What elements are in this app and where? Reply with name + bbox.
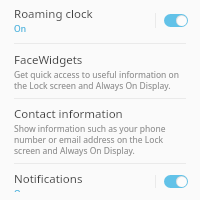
button[interactable]: FaceWidgets	[0, 44, 200, 98]
staticText: On	[14, 188, 26, 192]
staticText: Notifications	[14, 171, 83, 187]
button[interactable]: Contact information	[0, 99, 200, 163]
button[interactable]: Notifications	[0, 164, 200, 200]
staticText: On	[14, 23, 26, 35]
staticText: Contact information	[14, 106, 123, 122]
staticText: Roaming clock	[14, 6, 93, 22]
staticText: Get quick access to useful information o…	[14, 69, 182, 91]
button[interactable]: Roaming clock	[0, 0, 200, 43]
staticText: FaceWidgets	[14, 52, 83, 68]
button[interactable]: Toggle setting on or off	[149, 171, 194, 192]
staticText: Show information such as your phone numb…	[14, 123, 182, 156]
button[interactable]: Toggle setting on or off	[149, 9, 194, 32]
